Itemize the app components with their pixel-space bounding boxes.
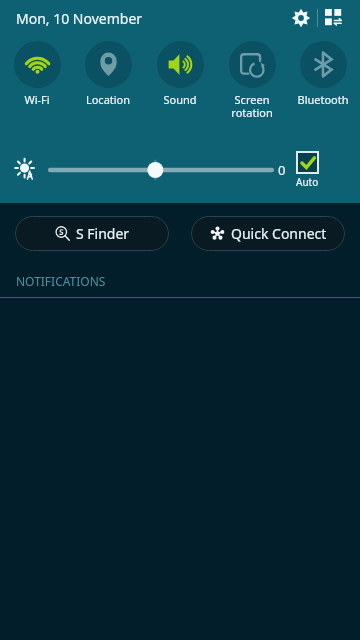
button[interactable]: Settings — [285, 2, 317, 34]
button[interactable]: Screen rotation — [217, 36, 287, 120]
button[interactable]: S Finder — [15, 216, 169, 251]
staticText: Bluetooth — [288, 92, 358, 107]
staticText: NOTIFICATIONS — [16, 273, 106, 289]
button[interactable]: Sound — [145, 36, 215, 107]
staticText: Wi-Fi — [2, 92, 72, 107]
staticText: Quick Connect — [231, 224, 327, 243]
button[interactable]: Edit quick settings — [318, 2, 350, 34]
staticText: S Finder — [76, 224, 130, 243]
button[interactable]: Bluetooth — [288, 36, 358, 107]
staticText: Location — [73, 92, 143, 107]
staticText: Mon, 10 November — [16, 9, 143, 28]
button[interactable]: Location — [73, 36, 143, 107]
staticText: Auto — [296, 175, 319, 189]
staticText: Sound — [145, 92, 215, 107]
button[interactable]: Quick Connect — [191, 216, 345, 251]
staticText: Screen rotation — [217, 92, 287, 120]
button[interactable]: Brightness — [48, 153, 274, 187]
button[interactable]: Auto — [296, 151, 319, 189]
staticText: 0 — [278, 161, 286, 179]
button[interactable]: Wi-Fi — [2, 36, 72, 107]
